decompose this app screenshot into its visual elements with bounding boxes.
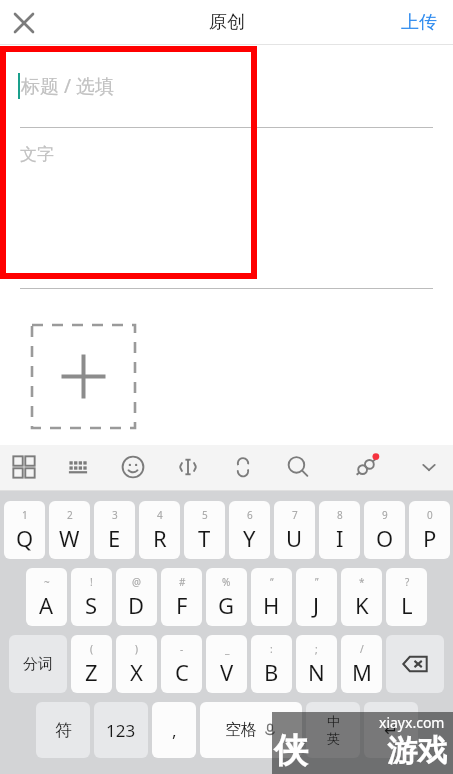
staticText: , [172, 719, 177, 742]
button[interactable]: Stickers [344, 445, 388, 489]
staticText: 4 [157, 508, 163, 522]
staticText: J [313, 590, 320, 620]
button[interactable]: Emoji [111, 445, 155, 489]
button[interactable]: ? [386, 568, 427, 626]
staticText: 5 [202, 508, 208, 522]
staticText: Y [243, 523, 256, 553]
button[interactable]: * [341, 568, 382, 626]
button[interactable]: 6 [229, 501, 270, 559]
staticText: 6 [247, 508, 253, 522]
staticText: ( [90, 642, 93, 656]
staticText: 文字 [20, 144, 54, 165]
staticText: ? [405, 575, 410, 589]
button[interactable]: Cursor [166, 445, 210, 489]
button[interactable]: Panels [2, 445, 46, 489]
staticText: N [308, 657, 325, 687]
staticText: xiayx.com [379, 713, 445, 732]
staticText: 123 [106, 719, 136, 742]
staticText: H [263, 590, 280, 620]
button[interactable]: Search [276, 445, 320, 489]
staticText: # [179, 575, 186, 589]
staticText: / [360, 642, 364, 656]
staticText: C [175, 657, 189, 687]
button[interactable]: ) [116, 635, 157, 693]
button[interactable]: Backspace [386, 635, 444, 693]
staticText: S [85, 590, 98, 620]
button[interactable]: 5 [184, 501, 225, 559]
staticText: 空格 [225, 720, 257, 740]
button[interactable]: ” [296, 568, 337, 626]
staticText: * [359, 575, 365, 589]
button[interactable]: : [251, 635, 292, 693]
staticText: L [401, 590, 413, 620]
button[interactable]: ~ [26, 568, 67, 626]
staticText: W [59, 523, 80, 553]
staticText: 0 [427, 508, 433, 522]
button[interactable]: 1 [4, 501, 45, 559]
staticText: I [336, 523, 344, 553]
staticText: 7 [292, 508, 298, 522]
staticText: D [128, 590, 145, 620]
button[interactable]: 123 [94, 702, 148, 758]
staticText: A [39, 590, 54, 620]
button[interactable]: 4 [139, 501, 180, 559]
button[interactable]: 9 [364, 501, 405, 559]
staticText: O [376, 523, 394, 553]
button[interactable]: 8 [319, 501, 360, 559]
staticText: _ [225, 642, 230, 656]
button[interactable]: 标题 / 选填 [0, 45, 453, 127]
staticText: Z [85, 657, 98, 687]
button[interactable]: ; [296, 635, 337, 693]
staticText: Q [16, 523, 34, 553]
staticText: ” [315, 575, 319, 589]
button[interactable]: Add image [31, 324, 136, 429]
staticText: 分词 [23, 655, 53, 674]
button[interactable]: 分词 [9, 635, 67, 693]
button[interactable]: “ [251, 568, 292, 626]
button[interactable]: Collapse [407, 445, 451, 489]
staticText: 侠 [274, 729, 308, 772]
button[interactable]: 空格 [200, 702, 302, 758]
staticText: ) [135, 642, 138, 656]
staticText: 上传 [401, 11, 437, 34]
button[interactable]: # [161, 568, 202, 626]
button[interactable]: 3 [94, 501, 135, 559]
staticText: - [180, 642, 184, 656]
staticText: 2 [67, 508, 73, 522]
button[interactable]: / [341, 635, 382, 693]
button[interactable]: Close [0, 0, 48, 45]
staticText: ↵ [384, 720, 399, 740]
button[interactable]: 7 [274, 501, 315, 559]
staticText: M [352, 657, 372, 687]
staticText: % [222, 575, 231, 589]
staticText: G [218, 590, 235, 620]
button[interactable]: % [206, 568, 247, 626]
button[interactable]: ! [71, 568, 112, 626]
staticText: E [108, 523, 121, 553]
button[interactable]: 0 [409, 501, 450, 559]
button[interactable]: 上传 [395, 5, 443, 40]
staticText: 符 [55, 720, 72, 741]
button[interactable]: 符 [36, 702, 90, 758]
staticText: 3 [112, 508, 118, 522]
staticText: 中 英 [327, 713, 340, 747]
staticText: P [423, 523, 437, 553]
staticText: 9 [382, 508, 388, 522]
button[interactable]: , [152, 702, 196, 758]
staticText: ~ [44, 575, 50, 589]
button[interactable]: 2 [49, 501, 90, 559]
button[interactable]: @ [116, 568, 157, 626]
button[interactable]: 中 英 [306, 702, 360, 758]
button[interactable]: Attach [221, 445, 265, 489]
staticText: 8 [337, 508, 343, 522]
staticText: F [176, 590, 188, 620]
button[interactable]: - [161, 635, 202, 693]
button[interactable]: _ [206, 635, 247, 693]
staticText: T [198, 523, 211, 553]
button[interactable]: ( [71, 635, 112, 693]
button[interactable]: 文字 [0, 128, 453, 288]
staticText: K [355, 590, 369, 620]
button[interactable]: Keyboard [56, 445, 100, 489]
staticText: ! [90, 575, 93, 589]
button[interactable]: ↵ [364, 702, 418, 758]
